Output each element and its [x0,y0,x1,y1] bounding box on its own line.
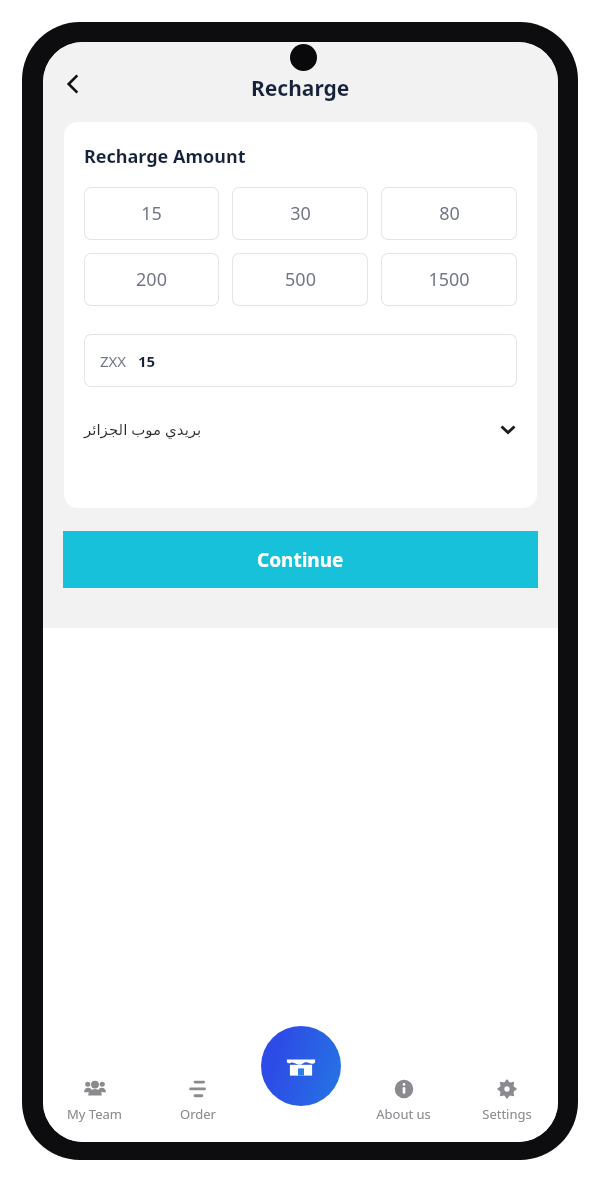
staticText: Recharge Amount [84,144,246,169]
button[interactable]: 1500 [381,253,517,306]
staticText: 80 [439,201,460,226]
button[interactable]: My Team [43,1070,146,1142]
staticText: Continue [257,547,344,573]
staticText: 500 [285,267,316,292]
button[interactable]: Back [49,60,97,108]
button[interactable]: 15 [84,187,219,240]
staticText: My Team [67,1105,122,1123]
button[interactable]: ZXX [84,334,517,387]
staticText: 1500 [428,267,470,292]
button[interactable]: Order [146,1070,249,1142]
staticText: Recharge [251,74,350,103]
button[interactable]: About us [352,1070,455,1142]
staticText: 30 [290,201,311,226]
button[interactable]: 80 [381,187,517,240]
staticText: بريدي موب الجزائر [84,419,202,439]
button[interactable]: 200 [84,253,219,306]
staticText: 200 [136,267,167,292]
button[interactable]: 500 [232,253,368,306]
staticText: 15 [141,201,162,226]
button[interactable]: Store [261,1026,341,1106]
button[interactable]: Continue [63,531,538,588]
staticText: ZXX [100,351,127,371]
button[interactable]: Settings [455,1070,558,1142]
button[interactable]: بريدي موب الجزائر [84,409,517,449]
staticText: Order [180,1105,216,1123]
staticText: 15 [138,351,156,371]
button[interactable]: 30 [232,187,368,240]
staticText: About us [376,1105,431,1123]
staticText: Settings [482,1105,532,1123]
